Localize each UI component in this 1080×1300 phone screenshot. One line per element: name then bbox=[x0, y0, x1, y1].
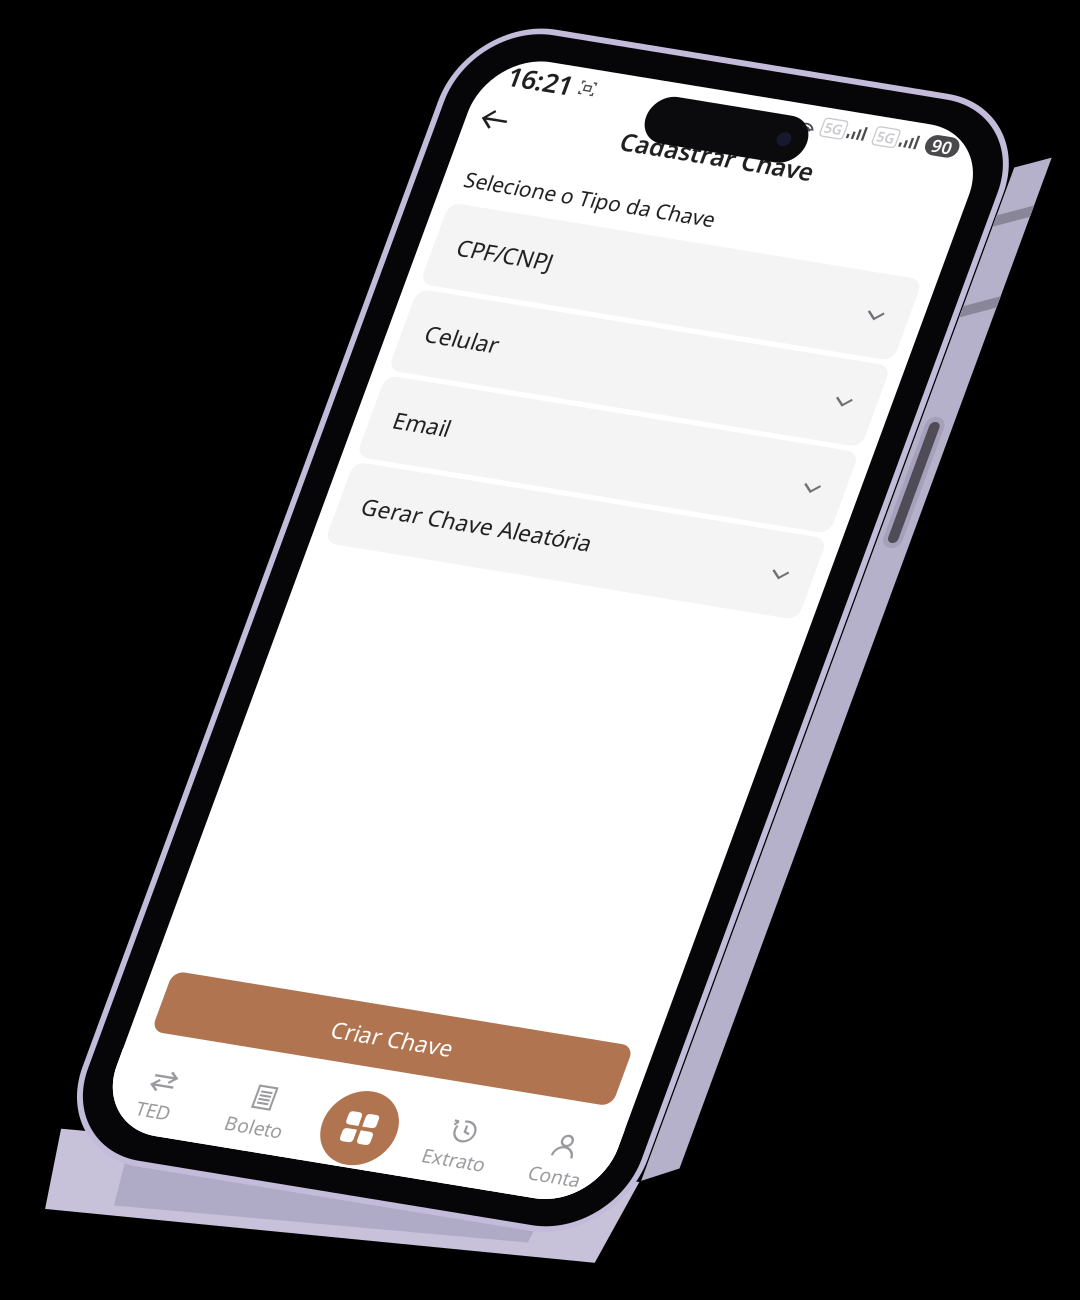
button[interactable]: Email bbox=[11, 254, 382, 319]
button[interactable]: Gerar Chave Aleatória bbox=[11, 323, 382, 387]
button[interactable]: Criar Chave bbox=[16, 726, 377, 774]
button[interactable]: Início bbox=[167, 792, 225, 850]
staticText: Criar Chave bbox=[149, 738, 244, 761]
